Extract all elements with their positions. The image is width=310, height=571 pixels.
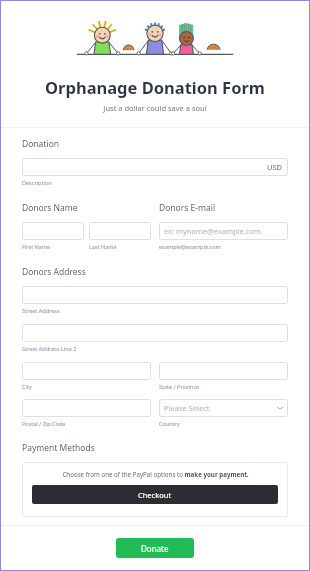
staticText: First Name (22, 243, 51, 250)
button[interactable] (159, 362, 288, 380)
button[interactable]: Checkout (32, 485, 278, 504)
staticText: Country (159, 420, 180, 427)
staticText: USD (267, 162, 283, 172)
button[interactable] (22, 399, 151, 417)
button[interactable] (89, 222, 151, 240)
button[interactable]: ex: myname@example.com (159, 222, 288, 240)
button[interactable] (22, 222, 84, 240)
button[interactable] (22, 324, 288, 342)
staticText: Donate (141, 543, 169, 554)
staticText: Last Name (89, 243, 117, 250)
staticText: ex: myname@example.com (164, 226, 261, 236)
staticText: Payment Methods (22, 442, 95, 454)
button[interactable]: Please Select (159, 399, 288, 417)
staticText: Please Select (164, 403, 210, 413)
staticText: Street Address Line 2 (22, 345, 77, 352)
staticText: Donors Address (22, 266, 86, 278)
staticText: Postal / Zip Code (22, 420, 66, 427)
staticText: example@example.com (159, 243, 221, 250)
staticText: Donors E-mail (159, 202, 216, 214)
button[interactable] (22, 362, 151, 380)
staticText: Orphanage Donation Form (45, 76, 265, 98)
staticText: Choose from one of the PayPal options to… (62, 470, 249, 478)
staticText: City (22, 383, 32, 390)
staticText: Donation (22, 138, 60, 150)
button[interactable]: USD (22, 158, 288, 176)
button[interactable]: Donate (116, 538, 194, 558)
staticText: State / Province (159, 383, 200, 390)
staticText: Just a dollar could save a soul (103, 103, 207, 113)
staticText: Donors Name (22, 202, 78, 214)
button[interactable] (22, 286, 288, 304)
staticText: Checkout (138, 490, 172, 500)
staticText: Description (22, 179, 52, 186)
staticText: Street Address (22, 307, 60, 314)
